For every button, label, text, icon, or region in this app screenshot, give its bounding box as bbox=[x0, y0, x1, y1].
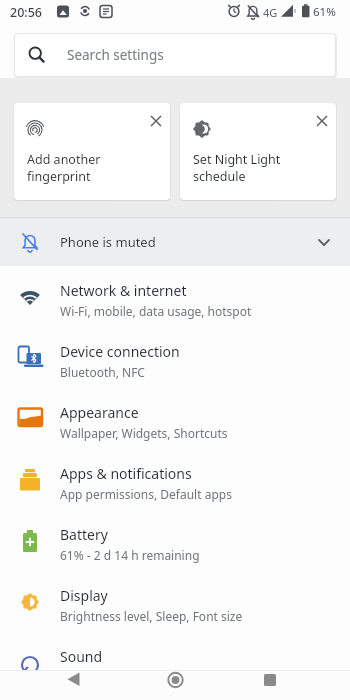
staticText: Wi-Fi, mobile, data usage, hotspot bbox=[60, 303, 252, 319]
staticText: Network & internet bbox=[60, 281, 187, 300]
staticText: Sound bbox=[60, 647, 103, 666]
staticText: App permissions, Default apps bbox=[60, 486, 232, 502]
button[interactable]: Phone is muted bbox=[0, 218, 350, 266]
staticText: Search settings bbox=[67, 46, 164, 64]
button[interactable]: Apps & notifications bbox=[0, 452, 350, 513]
staticText: Display bbox=[60, 586, 108, 605]
staticText: Appearance bbox=[60, 403, 139, 422]
staticText: Apps & notifications bbox=[60, 464, 192, 483]
staticText: 61% bbox=[313, 4, 336, 20]
button[interactable]: Search settings bbox=[14, 33, 336, 77]
button[interactable]: Device connection bbox=[0, 330, 350, 391]
staticText: Bluetooth, NFC bbox=[60, 364, 145, 380]
staticText: Brightness level, Sleep, Font size bbox=[60, 608, 243, 624]
button[interactable] bbox=[233, 670, 350, 700]
button[interactable]: Sound bbox=[0, 635, 350, 696]
staticText: 4G bbox=[263, 5, 278, 20]
staticText: Wallpaper, Widgets, Shortcuts bbox=[60, 425, 228, 441]
button[interactable] bbox=[0, 670, 116, 700]
button[interactable]: Display bbox=[0, 574, 350, 635]
button[interactable]: Battery bbox=[0, 513, 350, 574]
button[interactable]: Set Night Light schedule bbox=[180, 103, 336, 200]
button[interactable] bbox=[304, 103, 336, 135]
button[interactable]: Add another fingerprint bbox=[14, 103, 170, 200]
staticText: Add another fingerprint bbox=[27, 151, 101, 185]
staticText: 20:56 bbox=[10, 4, 43, 21]
staticText: 61% - 2 d 14 h remaining bbox=[60, 547, 200, 563]
button[interactable] bbox=[116, 670, 233, 700]
button[interactable]: Network & internet bbox=[0, 269, 350, 330]
staticText: Battery bbox=[60, 525, 108, 544]
staticText: Phone is muted bbox=[60, 233, 156, 251]
staticText: Device connection bbox=[60, 342, 180, 361]
button[interactable] bbox=[138, 103, 170, 135]
staticText: Volume, Do Not Disturb bbox=[60, 669, 194, 685]
staticText: Set Night Light schedule bbox=[193, 151, 281, 185]
button[interactable]: Appearance bbox=[0, 391, 350, 452]
